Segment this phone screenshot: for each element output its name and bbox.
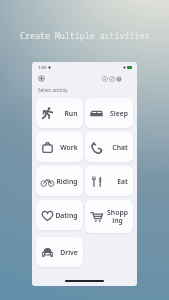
staticText: Sleep bbox=[110, 109, 128, 118]
button[interactable]: Run bbox=[36, 98, 83, 128]
staticText: Shopp ing bbox=[107, 208, 128, 225]
button[interactable]: Eat bbox=[85, 166, 133, 196]
button[interactable]: Chat bbox=[85, 132, 133, 162]
staticText: Riding bbox=[56, 177, 78, 186]
staticText: 1:50 bbox=[38, 65, 47, 71]
staticText: Dating bbox=[55, 211, 78, 220]
staticText: Chat bbox=[112, 143, 128, 152]
staticText: Drive bbox=[60, 248, 78, 257]
staticText: Select activity bbox=[38, 87, 68, 93]
button[interactable]: Sleep bbox=[85, 98, 133, 128]
button[interactable]: Profile bbox=[116, 76, 122, 82]
staticText: Work bbox=[60, 143, 78, 152]
button[interactable]: Work bbox=[36, 132, 83, 162]
button[interactable]: Dating bbox=[36, 200, 83, 230]
button[interactable]: Block bbox=[109, 76, 115, 82]
staticText: Run bbox=[64, 109, 78, 118]
staticText: Eat bbox=[117, 177, 128, 186]
button[interactable]: Shopp ing bbox=[85, 200, 133, 233]
button[interactable]: Record bbox=[38, 75, 45, 82]
button[interactable]: Riding bbox=[36, 166, 83, 196]
button[interactable]: Drive bbox=[36, 237, 83, 267]
staticText: Create Multiple activities bbox=[20, 30, 150, 41]
button[interactable]: Help bbox=[102, 76, 108, 82]
